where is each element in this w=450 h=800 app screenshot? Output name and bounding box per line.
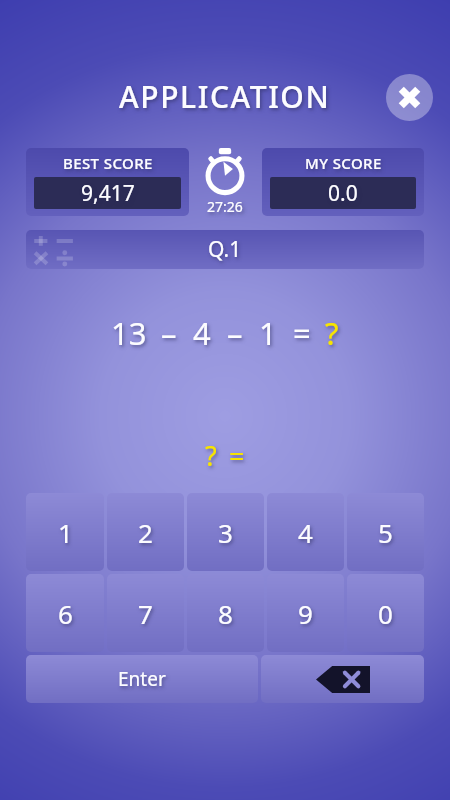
staticText: 27:26: [207, 197, 243, 216]
staticText: 1: [58, 515, 73, 550]
button[interactable]: 0: [347, 574, 424, 652]
button[interactable]: 6: [26, 574, 104, 652]
staticText: 5: [378, 515, 393, 550]
button[interactable]: BEST SCORE: [26, 148, 189, 216]
staticText: 0: [378, 596, 393, 631]
staticText: 4: [298, 515, 313, 550]
staticText: 9,417: [81, 179, 135, 208]
staticText: 6: [58, 596, 73, 631]
staticText: 1: [259, 312, 277, 354]
button[interactable]: 4: [267, 493, 344, 571]
staticText: MY SCORE: [305, 153, 382, 173]
staticText: APPLICATION: [119, 76, 331, 117]
staticText: 9: [298, 596, 313, 631]
staticText: 8: [218, 596, 233, 631]
button[interactable]: 9: [267, 574, 344, 652]
staticText: 0.0: [328, 179, 358, 208]
button[interactable]: Q.1: [26, 230, 424, 269]
staticText: =: [229, 437, 245, 474]
button[interactable]: 2: [107, 493, 184, 571]
button[interactable]: 7: [107, 574, 184, 652]
button[interactable]: 5: [347, 493, 424, 571]
button[interactable]: Backspace: [261, 655, 424, 703]
staticText: 2: [138, 515, 153, 550]
button[interactable]: 1: [26, 493, 104, 571]
staticText: Enter: [118, 666, 166, 692]
staticText: –: [161, 312, 177, 354]
staticText: BEST SCORE: [63, 153, 153, 173]
staticText: 7: [138, 596, 153, 631]
staticText: 4: [193, 312, 211, 354]
button[interactable]: Close: [386, 74, 433, 121]
button[interactable]: MY SCORE: [262, 148, 424, 216]
button[interactable]: Enter: [26, 655, 258, 703]
staticText: 13: [111, 312, 147, 354]
staticText: ?: [205, 437, 217, 474]
staticText: Q.1: [208, 235, 242, 264]
button[interactable]: 3: [187, 493, 264, 571]
staticText: ?: [325, 312, 339, 354]
staticText: 3: [218, 515, 233, 550]
staticText: =: [293, 312, 311, 354]
button[interactable]: 8: [187, 574, 264, 652]
staticText: –: [227, 312, 243, 354]
